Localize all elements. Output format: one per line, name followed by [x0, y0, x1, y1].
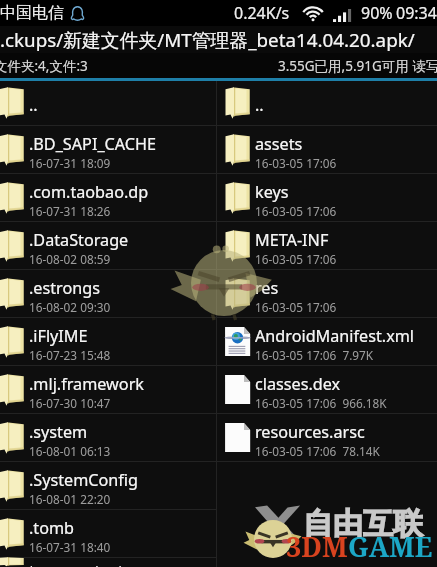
staticText: 16-08-01 06:13: [29, 443, 111, 459]
staticText: 16-07-31 18:09: [29, 155, 111, 171]
staticText: .system: [29, 421, 88, 443]
staticText: 90%: [361, 2, 393, 24]
staticText: resources.arsc: [255, 421, 365, 443]
staticText: 16-07-31 18:40: [29, 539, 111, 555]
staticText: 16-07-30 10:47: [29, 395, 111, 411]
button[interactable]: classes.dex: [217, 366, 437, 414]
staticText: 09:34: [396, 2, 437, 24]
staticText: GAME: [348, 528, 433, 565]
button[interactable]: .mlj.framework: [0, 366, 216, 414]
staticText: 3.55G已用,5.91G可用 读写: [278, 57, 437, 75]
staticText: ..: [255, 94, 264, 116]
staticText: .tomb: [29, 517, 75, 539]
button[interactable]: assets: [217, 126, 437, 174]
button[interactable]: .SystemConfig: [0, 462, 216, 510]
button[interactable]: .BD_SAPI_CACHE: [0, 126, 216, 174]
button[interactable]: AndroidManifest.xml: [217, 318, 437, 366]
staticText: 16-03-05 17:06: [255, 299, 337, 315]
button[interactable]: META-INF: [217, 222, 437, 270]
staticText: classes.dex: [255, 373, 341, 395]
staticText: 16-07-31 18:26: [29, 203, 111, 219]
staticText: .SystemConfig: [29, 469, 139, 491]
button[interactable]: transportext: [0, 558, 216, 567]
staticText: 0.24K/s: [234, 2, 290, 24]
staticText: 16-03-05 17:06 7.97K: [255, 347, 374, 363]
staticText: 16-08-01 22:20: [29, 491, 111, 507]
staticText: 中国电信: [0, 3, 64, 23]
staticText: .ckups/新建文件夹/MT管理器_beta14.04.20.apk/: [0, 27, 415, 53]
staticText: .mlj.framework: [29, 373, 144, 395]
staticText: .com.taobao.dp: [29, 181, 149, 203]
staticText: 16-08-02 09:30: [29, 299, 111, 315]
staticText: ..: [29, 94, 38, 116]
button[interactable]: ..: [0, 81, 216, 126]
staticText: 3DM: [286, 528, 348, 565]
staticText: 16-03-05 17:06: [255, 251, 337, 267]
staticText: .iFlyIME: [29, 325, 88, 347]
staticText: assets: [255, 133, 303, 155]
staticText: transportext: [29, 560, 124, 567]
staticText: res: [255, 277, 279, 299]
staticText: 16-03-05 17:06 78.14K: [255, 443, 380, 459]
button[interactable]: .DataStorage: [0, 222, 216, 270]
staticText: 16-08-02 08:59: [29, 251, 111, 267]
staticText: 16-03-05 17:06: [255, 155, 337, 171]
button[interactable]: keys: [217, 174, 437, 222]
staticText: .BD_SAPI_CACHE: [29, 133, 157, 155]
staticText: .estrongs: [29, 277, 100, 299]
button[interactable]: res: [217, 270, 437, 318]
staticText: 16-07-23 15:48: [29, 347, 111, 363]
staticText: 16-03-05 17:06 966.18K: [255, 395, 387, 411]
staticText: 16-03-05 17:06: [255, 203, 337, 219]
button[interactable]: .estrongs: [0, 270, 216, 318]
staticText: META-INF: [255, 229, 329, 251]
staticText: .DataStorage: [29, 229, 129, 251]
button[interactable]: ..: [217, 81, 437, 126]
button[interactable]: resources.arsc: [217, 414, 437, 462]
staticText: 自由互联: [303, 505, 423, 543]
button[interactable]: .iFlyIME: [0, 318, 216, 366]
staticText: keys: [255, 181, 289, 203]
button[interactable]: .com.taobao.dp: [0, 174, 216, 222]
staticText: AndroidManifest.xml: [255, 325, 415, 347]
button[interactable]: .system: [0, 414, 216, 462]
button[interactable]: .tomb: [0, 510, 216, 558]
staticText: 文件夹:4,文件:3: [0, 57, 88, 75]
